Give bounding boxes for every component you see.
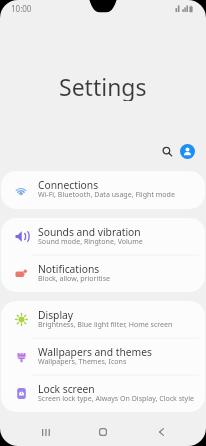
button[interactable]: Lock screen xyxy=(1,375,205,412)
button[interactable]: Recents xyxy=(33,419,59,445)
staticText: Settings xyxy=(59,71,147,101)
staticText: Wallpapers, Themes, Icons xyxy=(38,356,127,366)
button[interactable]: Connections xyxy=(1,171,205,208)
staticText: Wallpapers and themes xyxy=(38,345,152,359)
staticText: Brightness, Blue light filter, Home scre… xyxy=(38,319,173,329)
button[interactable]: Sounds and vibration xyxy=(1,218,205,255)
button[interactable]: Notifications xyxy=(1,255,205,292)
staticText: Wi-Fi, Bluetooth, Data usage, Flight mod… xyxy=(38,189,175,199)
button[interactable]: Search xyxy=(158,142,176,160)
staticText: 10:00 xyxy=(11,3,32,14)
staticText: Display xyxy=(38,308,74,322)
staticText: Sound mode, Ringtone, Volume xyxy=(38,236,143,246)
button[interactable]: Display xyxy=(1,301,205,338)
button[interactable]: Wallpapers and themes xyxy=(1,338,205,375)
button[interactable]: Home xyxy=(90,419,116,445)
button[interactable]: Account xyxy=(180,144,195,159)
staticText: Sounds and vibration xyxy=(38,225,141,239)
button[interactable]: Back xyxy=(148,419,174,445)
staticText: Screen lock type, Always On Display, Clo… xyxy=(38,393,194,403)
staticText: Connections xyxy=(38,178,99,192)
staticText: Notifications xyxy=(38,262,100,276)
staticText: Lock screen xyxy=(38,382,95,396)
staticText: Block, allow, prioritise xyxy=(38,273,110,283)
